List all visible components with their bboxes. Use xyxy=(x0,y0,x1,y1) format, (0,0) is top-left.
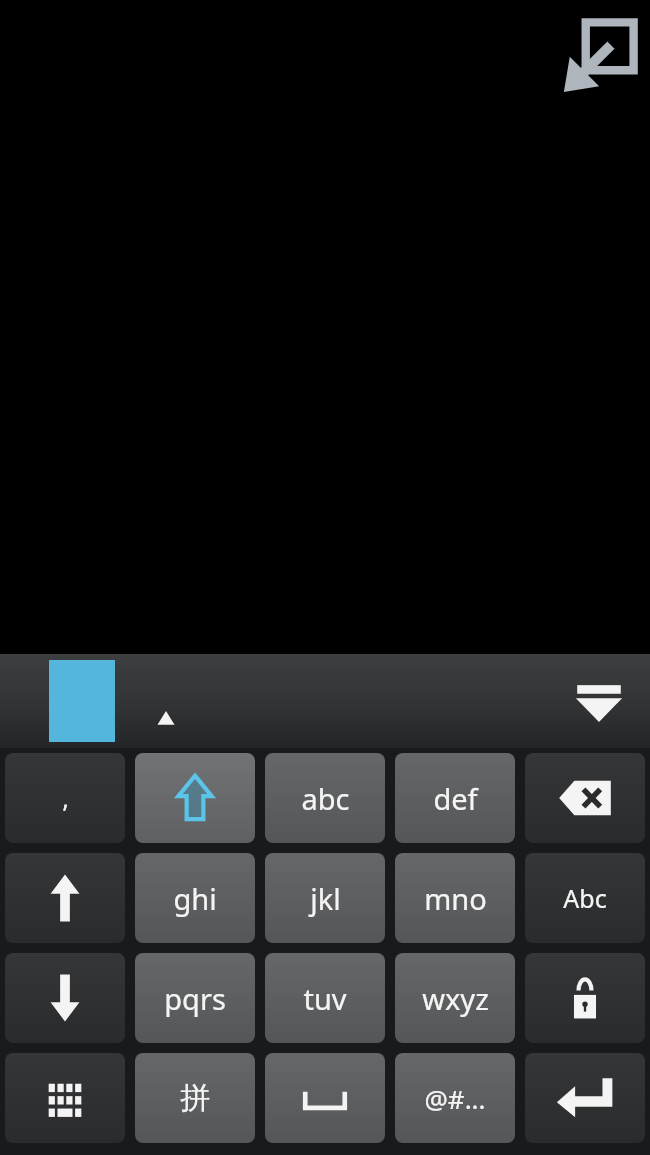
staticText: @#... xyxy=(424,1081,486,1116)
staticText: def xyxy=(433,779,478,818)
button[interactable]: jkl xyxy=(265,853,385,943)
button[interactable]: Cursor down xyxy=(5,953,125,1043)
button[interactable]: Expand candidates xyxy=(143,698,189,734)
button[interactable]: Space xyxy=(265,1053,385,1143)
staticText: ghi xyxy=(173,879,217,918)
staticText: jkl xyxy=(310,879,341,918)
staticText: tuv xyxy=(303,979,347,1018)
staticText: abc xyxy=(301,779,350,818)
staticText: wxyz xyxy=(422,979,489,1018)
button[interactable]: ghi xyxy=(135,853,255,943)
staticText: 拼 xyxy=(180,1079,210,1117)
button[interactable]: pqrs xyxy=(135,953,255,1043)
staticText: mno xyxy=(424,879,487,918)
button[interactable]: Shift xyxy=(135,753,255,843)
button[interactable]: , xyxy=(5,753,125,843)
button[interactable]: Abc xyxy=(525,853,645,943)
button[interactable]: tuv xyxy=(265,953,385,1043)
button[interactable]: Switch keyboard xyxy=(5,1053,125,1143)
button[interactable]: def xyxy=(395,753,515,843)
button[interactable]: mno xyxy=(395,853,515,943)
staticText: Abc xyxy=(563,881,607,915)
button[interactable]: wxyz xyxy=(395,953,515,1043)
button[interactable]: Cursor up xyxy=(5,853,125,943)
button[interactable]: 拼 xyxy=(135,1053,255,1143)
staticText: pqrs xyxy=(164,979,226,1018)
button[interactable]: @#... xyxy=(395,1053,515,1143)
button[interactable]: Lock xyxy=(525,953,645,1043)
button[interactable]: Enter xyxy=(525,1053,645,1143)
button[interactable]: Restore window xyxy=(558,14,642,98)
staticText: , xyxy=(62,781,69,815)
button[interactable]: Backspace xyxy=(525,753,645,843)
button[interactable]: abc xyxy=(265,753,385,843)
button[interactable]: Hide keyboard xyxy=(566,668,632,734)
